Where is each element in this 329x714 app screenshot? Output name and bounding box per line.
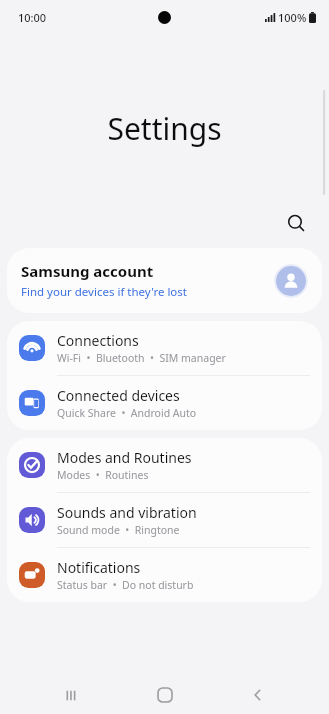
staticText: 10:00 <box>18 10 47 25</box>
staticText: Samsung account <box>21 261 154 281</box>
staticText: Quick Share • Android Auto <box>57 406 197 420</box>
staticText: 100% <box>278 10 307 25</box>
button[interactable]: Notifications <box>7 548 322 602</box>
button[interactable]: Search <box>277 204 315 242</box>
button[interactable]: Samsung account profile <box>274 264 308 298</box>
button[interactable]: Modes and Routines <box>7 438 322 492</box>
staticText: Sounds and vibration <box>57 503 197 522</box>
button[interactable]: Connections <box>7 321 322 375</box>
staticText: Settings <box>0 108 329 149</box>
button[interactable]: Back <box>236 676 280 714</box>
button[interactable]: Home <box>143 676 187 714</box>
staticText: Sound mode • Ringtone <box>57 523 180 537</box>
staticText: Modes and Routines <box>57 448 192 467</box>
staticText: Wi-Fi • Bluetooth • SIM manager <box>57 351 226 365</box>
staticText: Connected devices <box>57 386 180 405</box>
button[interactable]: Sounds and vibration <box>7 493 322 547</box>
staticText: Find your devices if they're lost <box>21 284 187 300</box>
staticText: Connections <box>57 331 139 350</box>
staticText: Status bar • Do not disturb <box>57 578 194 592</box>
staticText: Modes • Routines <box>57 468 149 482</box>
staticText: Notifications <box>57 558 141 577</box>
button[interactable]: Connected devices <box>7 376 322 430</box>
button[interactable]: Samsung account <box>7 248 322 313</box>
button[interactable]: Recent apps <box>49 676 93 714</box>
